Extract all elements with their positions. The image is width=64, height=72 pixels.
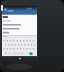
button[interactable] <box>2 36 37 57</box>
button[interactable] <box>1 5 3 11</box>
button[interactable] <box>5 9 7 11</box>
button[interactable] <box>19 58 21 60</box>
button[interactable] <box>29 52 32 55</box>
